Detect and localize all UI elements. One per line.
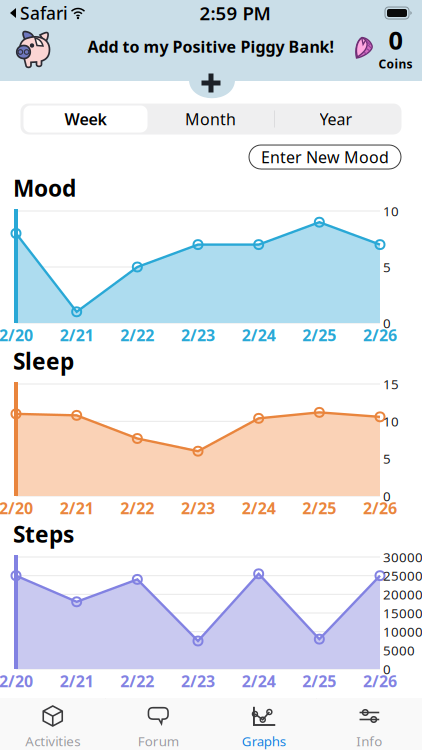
button[interactable]: Enter New Mood	[249, 145, 401, 169]
staticText: 2/21	[60, 324, 94, 346]
button[interactable]: Graphs	[211, 698, 316, 750]
staticText: 2/22	[120, 670, 154, 692]
staticText: Sleep	[13, 346, 74, 376]
staticText: 2/20	[0, 324, 33, 346]
staticText: Mood	[13, 173, 76, 203]
button[interactable]: Week	[23, 105, 147, 132]
staticText: 0	[388, 23, 402, 57]
button[interactable]: Info	[316, 698, 422, 750]
staticText: 2:59 PM	[199, 1, 270, 25]
staticText: 0	[383, 487, 391, 505]
staticText: Graphs	[242, 732, 286, 750]
staticText: 5000	[383, 641, 415, 659]
staticText: 20000	[383, 585, 422, 603]
staticText: 2/20	[0, 670, 33, 692]
staticText: Year	[319, 108, 352, 130]
staticText: Info	[356, 732, 382, 750]
staticText: 2/22	[120, 324, 154, 346]
staticText: 2/24	[242, 497, 276, 519]
staticText: 2/25	[302, 670, 336, 692]
staticText: 2/26	[363, 497, 397, 519]
staticText: 2/21	[60, 670, 94, 692]
staticText: 2/20	[0, 497, 33, 519]
staticText: 0	[383, 660, 391, 678]
staticText: 2/21	[60, 497, 94, 519]
staticText: Month	[185, 108, 236, 130]
staticText: 0	[383, 314, 391, 332]
staticText: 5	[383, 258, 391, 276]
staticText: 10	[383, 412, 399, 430]
staticText: 2/26	[363, 324, 397, 346]
staticText: 30000	[383, 548, 422, 566]
staticText: Enter New Mood	[261, 146, 389, 168]
staticText: 10000	[383, 623, 422, 640]
staticText: 2/23	[181, 670, 215, 692]
staticText: 2/25	[302, 324, 336, 346]
staticText: Coins	[378, 56, 412, 72]
staticText: 2/24	[242, 324, 276, 346]
staticText: 2/23	[181, 497, 215, 519]
staticText: 15000	[383, 604, 422, 622]
staticText: 10	[383, 202, 399, 220]
button[interactable]: Add	[197, 71, 225, 94]
staticText: 25000	[383, 567, 422, 584]
button[interactable]: Forum	[105, 698, 211, 750]
button[interactable]: Activities	[0, 698, 105, 750]
staticText: Forum	[138, 732, 179, 750]
staticText: Week	[64, 108, 106, 130]
staticText: 15	[383, 375, 399, 393]
staticText: Safari	[20, 1, 68, 24]
staticText: Add to my Positive Piggy Bank!	[87, 36, 334, 57]
staticText: Activities	[25, 732, 80, 750]
button[interactable]: Year	[273, 105, 398, 132]
staticText: 2/23	[181, 324, 215, 346]
staticText: 2/26	[363, 670, 397, 692]
staticText: 2/22	[120, 497, 154, 519]
staticText: 5	[383, 450, 391, 467]
staticText: 2/24	[242, 670, 276, 692]
staticText: Steps	[13, 519, 74, 549]
button[interactable]: Month	[147, 105, 273, 132]
staticText: 2/25	[302, 497, 336, 519]
